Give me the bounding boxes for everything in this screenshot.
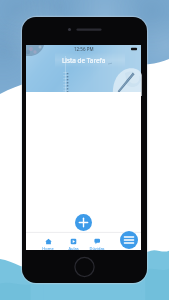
button[interactable]: Dúvidas — [85, 232, 109, 250]
staticText: Dúvidas — [89, 246, 105, 251]
button[interactable]: Add task — [75, 214, 92, 231]
button[interactable]: Home — [36, 232, 60, 250]
staticText: Lista de Tarefa — [62, 56, 106, 65]
button[interactable]: Aulas — [61, 232, 85, 250]
staticText: 12:56 PM — [74, 46, 94, 52]
staticText: Aulas — [68, 246, 79, 251]
button[interactable]: Menu — [120, 231, 138, 249]
staticText: Home — [42, 246, 54, 251]
